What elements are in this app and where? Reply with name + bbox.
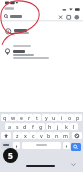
button[interactable]: r	[25, 114, 33, 121]
button[interactable]: a	[5, 123, 13, 130]
button[interactable]: k	[62, 123, 70, 130]
staticText: e	[20, 114, 23, 121]
button[interactable]: e	[17, 114, 25, 121]
button[interactable]: s	[13, 123, 21, 130]
staticText: m	[63, 132, 68, 139]
button[interactable]	[71, 143, 81, 151]
button[interactable]: u	[50, 114, 58, 121]
staticText: h	[48, 123, 52, 130]
staticText: d	[23, 123, 27, 130]
staticText: k	[65, 123, 68, 130]
button[interactable]: o	[66, 114, 74, 121]
button[interactable]: n	[53, 132, 61, 139]
button[interactable]	[1, 142, 11, 149]
button[interactable]: w	[9, 114, 17, 121]
staticText: c	[32, 132, 35, 139]
staticText: g	[39, 123, 43, 130]
button[interactable]: h	[46, 123, 54, 130]
button[interactable]: i	[58, 114, 66, 121]
staticText: a	[8, 123, 11, 130]
staticText: x	[24, 132, 27, 139]
button[interactable]: x	[21, 132, 29, 139]
staticText: w	[11, 114, 16, 121]
staticText: z	[16, 132, 19, 139]
staticText: 5	[8, 150, 13, 162]
staticText: r	[28, 114, 31, 121]
button[interactable]: ,	[13, 142, 20, 149]
staticText: v	[40, 132, 43, 139]
button[interactable]	[26, 165, 55, 167]
staticText: i	[61, 114, 63, 121]
staticText: .	[66, 142, 68, 149]
button[interactable]	[72, 132, 82, 139]
button[interactable]: b	[45, 132, 53, 139]
button[interactable]: p	[74, 114, 82, 121]
staticText: u	[52, 114, 56, 121]
staticText: n	[55, 132, 59, 139]
staticText: b	[47, 132, 51, 139]
button[interactable]: y	[42, 114, 50, 121]
staticText: f	[32, 123, 34, 130]
staticText: s	[16, 123, 19, 130]
button[interactable]	[22, 142, 61, 149]
button[interactable]: c	[29, 132, 37, 139]
button[interactable]	[0, 26, 83, 37]
staticText: l	[73, 123, 75, 130]
staticText: j	[57, 123, 59, 130]
button[interactable]: 5	[3, 148, 18, 163]
button[interactable]: .	[63, 142, 70, 149]
button[interactable]: l	[70, 123, 78, 130]
staticText: t	[36, 114, 38, 121]
button[interactable]	[0, 12, 83, 21]
button[interactable]: v	[37, 132, 45, 139]
button[interactable]: d	[21, 123, 29, 130]
button[interactable]: t	[33, 114, 41, 121]
button[interactable]: m	[61, 132, 69, 139]
button[interactable]: z	[13, 132, 21, 139]
button[interactable]: q	[1, 114, 9, 121]
staticText: ,	[16, 142, 18, 149]
button[interactable]	[1, 132, 11, 139]
button[interactable]: f	[29, 123, 37, 130]
staticText: y	[45, 114, 48, 121]
button[interactable]: g	[37, 123, 45, 130]
staticText: q	[3, 114, 7, 121]
staticText: p	[76, 114, 80, 121]
button[interactable]	[0, 43, 83, 58]
button[interactable]: j	[54, 123, 62, 130]
staticText: o	[68, 114, 72, 121]
